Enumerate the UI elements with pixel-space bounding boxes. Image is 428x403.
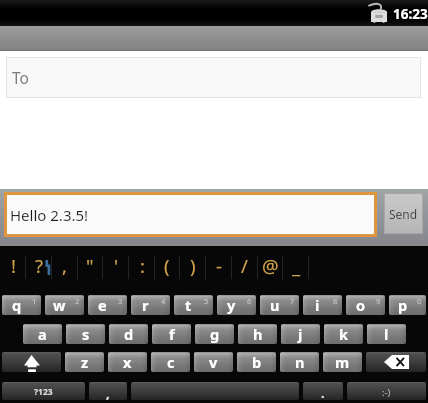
staticText: t bbox=[185, 295, 192, 315]
staticText: p bbox=[398, 295, 408, 315]
staticText: / bbox=[241, 253, 248, 278]
button[interactable]: h bbox=[238, 324, 277, 344]
button[interactable]: s bbox=[66, 324, 105, 344]
staticText: To bbox=[12, 67, 29, 88]
staticText: ( bbox=[164, 253, 170, 278]
button[interactable]: y bbox=[217, 295, 256, 315]
button[interactable]: q bbox=[2, 295, 41, 315]
button[interactable]: f bbox=[152, 324, 191, 344]
staticText: m bbox=[335, 352, 350, 372]
button[interactable]: o bbox=[346, 295, 385, 315]
staticText: o bbox=[356, 295, 366, 315]
button[interactable]: z bbox=[65, 352, 104, 372]
staticText: y bbox=[227, 295, 236, 315]
button[interactable]: ) bbox=[180, 248, 206, 287]
staticText: , bbox=[106, 384, 110, 400]
staticText: Hello 2.3.5! bbox=[10, 205, 89, 225]
button[interactable]: Send bbox=[384, 193, 423, 234]
staticText: " bbox=[86, 253, 94, 278]
staticText: 8 bbox=[333, 296, 338, 306]
button[interactable]: ! bbox=[0, 248, 26, 287]
button[interactable]: j bbox=[281, 324, 320, 344]
staticText: 2 bbox=[75, 296, 80, 306]
staticText: Send bbox=[389, 206, 418, 222]
staticText: 16:23 bbox=[393, 5, 428, 23]
staticText: 1 bbox=[32, 296, 37, 306]
button[interactable]: ?123 bbox=[2, 382, 85, 400]
button[interactable]: m bbox=[323, 352, 362, 372]
staticText: : bbox=[140, 253, 145, 278]
button[interactable]: @ bbox=[257, 248, 283, 287]
other: USB debugging connected bbox=[369, 3, 388, 24]
staticText: 3 bbox=[118, 296, 123, 306]
staticText: @ bbox=[262, 253, 279, 278]
button[interactable]: c bbox=[151, 352, 190, 372]
button[interactable]: . bbox=[303, 382, 343, 400]
button[interactable]: ( bbox=[154, 248, 180, 287]
staticText: 5 bbox=[204, 296, 209, 306]
staticText: v bbox=[209, 352, 218, 372]
button[interactable]: r bbox=[131, 295, 170, 315]
staticText: e bbox=[98, 295, 107, 315]
button[interactable]: g bbox=[195, 324, 234, 344]
staticText: s bbox=[82, 324, 90, 344]
staticText: ) bbox=[190, 253, 196, 278]
staticText: i bbox=[315, 295, 320, 315]
staticText: q bbox=[12, 295, 22, 315]
staticText: j bbox=[298, 324, 303, 344]
button[interactable]: Backspace bbox=[366, 352, 426, 372]
button[interactable]: ' bbox=[103, 248, 129, 287]
button[interactable]: t bbox=[174, 295, 213, 315]
staticText: w bbox=[53, 295, 66, 315]
staticText: 6 bbox=[247, 296, 252, 306]
staticText: r bbox=[142, 295, 149, 315]
staticText: 4 bbox=[161, 296, 166, 306]
staticText: , bbox=[62, 253, 67, 278]
staticText: l bbox=[384, 324, 389, 344]
button[interactable]: / bbox=[231, 248, 257, 287]
button[interactable]: w bbox=[45, 295, 84, 315]
button[interactable]: Shift bbox=[2, 352, 61, 372]
button[interactable]: u bbox=[260, 295, 299, 315]
button[interactable]: , bbox=[89, 382, 127, 400]
button[interactable]: : bbox=[129, 248, 155, 287]
staticText: - bbox=[216, 253, 222, 278]
button[interactable]: v bbox=[194, 352, 233, 372]
button[interactable]: To bbox=[6, 57, 421, 98]
button[interactable]: :-) bbox=[347, 382, 426, 400]
button[interactable]: " bbox=[77, 248, 103, 287]
button[interactable]: i bbox=[303, 295, 342, 315]
staticText: d bbox=[124, 324, 134, 344]
staticText: ?123 bbox=[34, 386, 53, 398]
button[interactable]: ? bbox=[26, 248, 52, 287]
button[interactable]: n bbox=[280, 352, 319, 372]
staticText: 7 bbox=[290, 296, 295, 306]
staticText: :-) bbox=[382, 386, 391, 399]
staticText: f bbox=[169, 324, 175, 344]
staticText: _ bbox=[292, 253, 301, 278]
button[interactable]: Hello 2.3.5! bbox=[7, 195, 374, 234]
staticText: c bbox=[167, 352, 175, 372]
staticText: 0 bbox=[417, 296, 422, 306]
button[interactable]: - bbox=[206, 248, 232, 287]
button[interactable]: Space bbox=[131, 382, 299, 400]
staticText: ? bbox=[35, 253, 44, 278]
button[interactable]: x bbox=[108, 352, 147, 372]
staticText: g bbox=[210, 324, 220, 344]
staticText: ! bbox=[11, 253, 16, 278]
staticText: u bbox=[270, 295, 280, 315]
staticText: ' bbox=[114, 253, 119, 278]
staticText: n bbox=[295, 352, 305, 372]
staticText: . bbox=[321, 384, 325, 400]
button[interactable]: b bbox=[237, 352, 276, 372]
button[interactable]: a bbox=[23, 324, 62, 344]
button[interactable]: p bbox=[389, 295, 426, 315]
button[interactable]: , bbox=[51, 248, 77, 287]
button[interactable]: k bbox=[324, 324, 363, 344]
button[interactable]: _ bbox=[283, 248, 309, 287]
button[interactable]: e bbox=[88, 295, 127, 315]
button[interactable]: d bbox=[109, 324, 148, 344]
staticText: b bbox=[252, 352, 262, 372]
button[interactable]: l bbox=[367, 324, 406, 344]
staticText: z bbox=[81, 352, 89, 372]
